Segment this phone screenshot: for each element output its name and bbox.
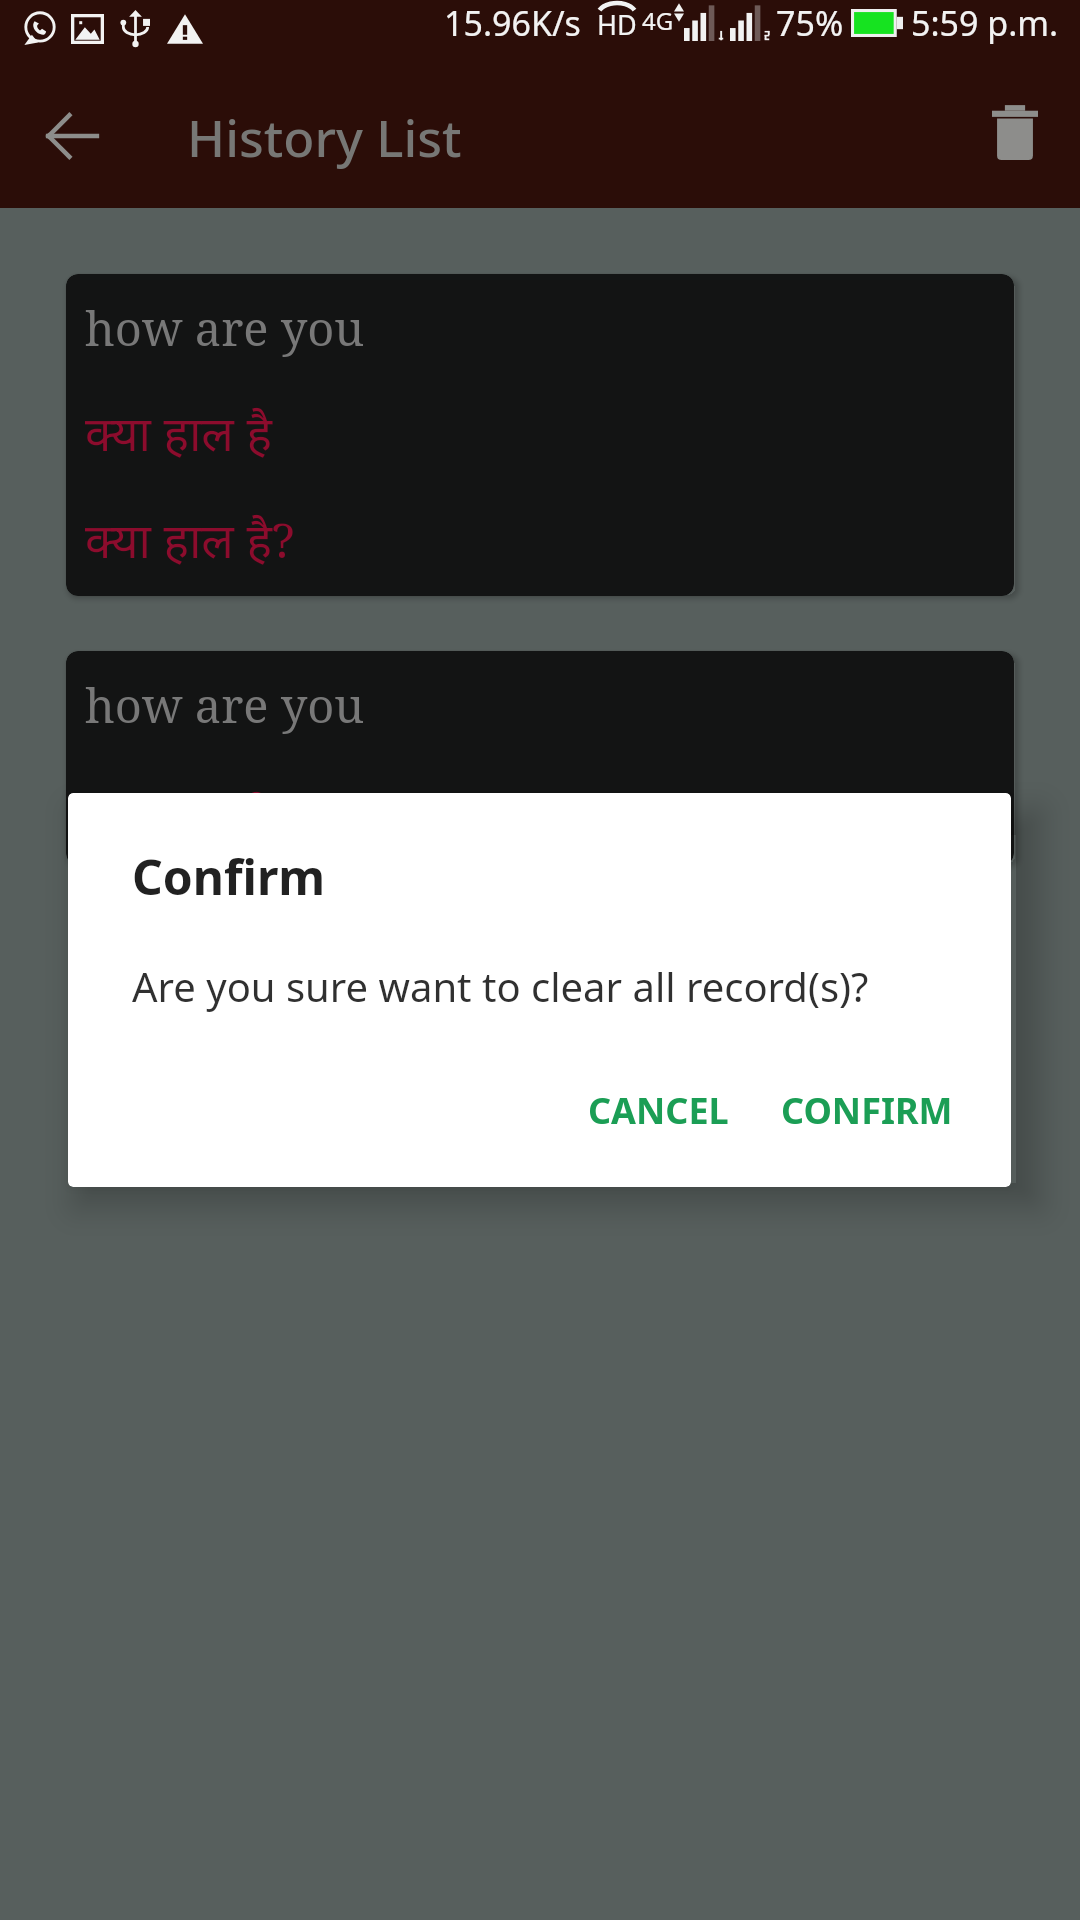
- staticText: क्या हाल है: [85, 400, 272, 465]
- staticText: क्या हाल है?: [85, 507, 295, 572]
- staticText: CANCEL: [588, 1086, 729, 1135]
- staticText: Are you sure want to clear all record(s)…: [132, 959, 869, 1013]
- button[interactable]: how are you: [66, 274, 1014, 596]
- button[interactable]: Delete all records: [936, 64, 1080, 208]
- staticText: HD: [597, 6, 637, 43]
- staticText: 15.96K/s: [444, 0, 581, 46]
- staticText: CONFIRM: [781, 1086, 953, 1135]
- button[interactable]: Back: [0, 64, 144, 208]
- staticText: क्या हाल है: [85, 784, 272, 849]
- staticText: Confirm: [132, 844, 326, 909]
- button[interactable]: how are you: [66, 651, 1014, 865]
- button[interactable]: CANCEL: [570, 1072, 747, 1149]
- staticText: 4G: [642, 4, 674, 37]
- staticText: how are you: [85, 296, 365, 360]
- staticText: History List: [187, 102, 462, 171]
- staticText: 75%: [776, 0, 844, 46]
- button[interactable]: CONFIRM: [763, 1072, 971, 1149]
- staticText: how are you: [85, 673, 365, 737]
- staticText: 5:59 p.m.: [911, 0, 1059, 46]
